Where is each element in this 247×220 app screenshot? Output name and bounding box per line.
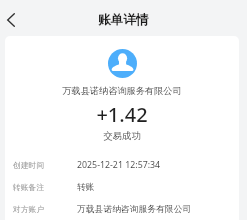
button[interactable]: 创建时间	[5, 154, 239, 176]
staticText: 交易成功	[5, 130, 239, 142]
button[interactable]: 对方账户	[5, 198, 239, 220]
staticText: +1.42	[5, 101, 239, 128]
staticText: 2025-12-21 12:57:34	[77, 159, 161, 171]
staticText: 万载县诺纳咨询服务有限公司	[5, 85, 239, 97]
staticText: 对方账户	[13, 204, 45, 214]
staticText: 创建时间	[13, 160, 45, 170]
staticText: 账单详情	[98, 12, 149, 28]
button[interactable]: 转账备注	[5, 176, 239, 198]
staticText: 转账	[77, 182, 95, 193]
staticText: 万载县诺纳咨询服务有限公司	[77, 204, 192, 215]
button[interactable]: Back	[0, 8, 22, 32]
staticText: 转账备注	[13, 182, 45, 192]
